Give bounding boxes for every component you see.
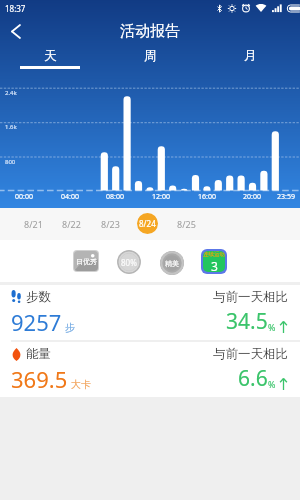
staticText: 18:37 [5,3,26,14]
staticText: 00:00 [15,192,33,202]
button[interactable]: 周 [100,46,200,70]
staticText: 日优秀 [76,257,97,266]
button[interactable]: 8/21 [20,213,46,234]
staticText: 9257 [11,307,62,337]
staticText: 369.5 [11,364,68,394]
staticText: 活动报告 [120,22,180,41]
staticText: 8/22 [62,218,81,230]
staticText: 月 [244,48,257,64]
staticText: % [268,321,276,333]
staticText: 8/21 [24,218,43,230]
staticText: 8/23 [101,218,120,230]
staticText: 8/25 [177,218,196,230]
button[interactable]: 80% 勋章 [117,250,141,274]
staticText: 天 [44,48,57,64]
button[interactable]: 精美 勋章 [160,251,184,275]
staticText: 与前一天相比 [213,289,288,305]
staticText: 3 [211,258,218,272]
staticText: 1.6k [5,123,17,131]
staticText: 800 [5,158,16,166]
staticText: 步数 [26,289,51,305]
staticText: 04:00 [61,192,79,202]
staticText: 20:00 [243,192,261,202]
staticText: 周 [144,48,157,64]
staticText: 精美 [165,259,179,268]
staticText: 16:00 [198,192,216,202]
button[interactable]: 连续运动 3 天 [203,251,225,272]
button[interactable]: Back [0,16,32,46]
button[interactable]: 8/23 [97,213,123,234]
staticText: 6.6 [238,364,268,393]
staticText: 2.4k [5,89,17,97]
staticText: 8/24 [139,218,156,229]
staticText: 80% [121,257,137,268]
staticText: 34.5 [226,307,268,336]
staticText: 23:59 [277,192,295,202]
staticText: 能量 [26,346,51,362]
staticText: 步 [65,321,75,334]
staticText: % [268,378,276,390]
staticText: 08:00 [106,192,124,202]
button[interactable]: 8/24 [137,213,158,234]
button[interactable]: 月 [200,46,300,70]
staticText: 大卡 [71,378,91,391]
button[interactable]: 天 [0,46,100,70]
button[interactable]: 日优秀 勋章 [74,251,98,271]
staticText: 12:00 [152,192,170,202]
button[interactable]: 能量 [0,342,300,397]
button[interactable]: 8/22 [58,213,84,234]
staticText: 连续运动 [203,251,225,258]
button[interactable]: 8/25 [173,213,199,234]
staticText: 与前一天相比 [213,346,288,362]
button[interactable]: 步数 [0,285,300,340]
